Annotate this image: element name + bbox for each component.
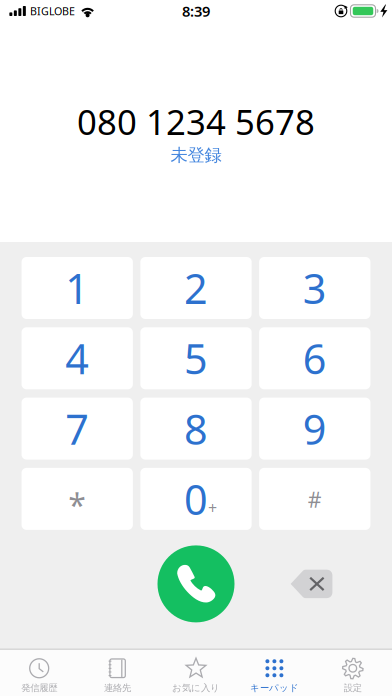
staticText: 発信履歴 [21, 682, 57, 694]
button[interactable]: 8 [140, 398, 252, 460]
button[interactable]: # [259, 468, 370, 530]
staticText: 6 [303, 331, 327, 386]
staticText: BIGLOBE [30, 4, 75, 18]
staticText: 8:39 [182, 1, 210, 21]
button[interactable]: 6 [259, 327, 370, 389]
staticText: 連絡先 [104, 682, 131, 694]
button[interactable]: 1 [22, 257, 133, 319]
staticText: 0 [184, 471, 208, 526]
staticText: 設定 [344, 682, 362, 694]
button[interactable]: 発信履歴 [0, 649, 78, 696]
staticText: 9 [303, 401, 327, 456]
button[interactable]: 設定 [314, 649, 392, 696]
button[interactable]: 7 [22, 398, 133, 460]
staticText: キーパッド [250, 682, 299, 694]
button[interactable]: * [22, 468, 133, 530]
staticText: # [308, 485, 322, 513]
button[interactable]: Delete [290, 569, 333, 599]
button[interactable]: 連絡先 [78, 649, 157, 696]
button[interactable]: 3 [259, 257, 370, 319]
staticText: + [208, 497, 217, 518]
staticText: 4 [65, 331, 89, 386]
staticText: 3 [303, 261, 327, 315]
button[interactable]: 9 [259, 398, 370, 460]
button[interactable]: 5 [140, 327, 252, 389]
staticText: 2 [184, 261, 208, 315]
staticText: 8 [184, 401, 208, 456]
button[interactable]: キーパッド [235, 649, 314, 696]
staticText: お気に入り [172, 682, 220, 694]
button[interactable]: 2 [140, 257, 252, 319]
staticText: 080 1234 5678 [77, 98, 315, 144]
button[interactable]: お気に入り [157, 649, 235, 696]
staticText: 未登録 [170, 144, 221, 166]
staticText: 7 [65, 401, 89, 456]
staticText: 5 [184, 331, 208, 386]
staticText: * [68, 484, 86, 526]
button[interactable]: 4 [22, 327, 133, 389]
staticText: 1 [65, 261, 89, 315]
button[interactable]: Call [157, 545, 234, 622]
button[interactable]: 0 [140, 468, 252, 530]
